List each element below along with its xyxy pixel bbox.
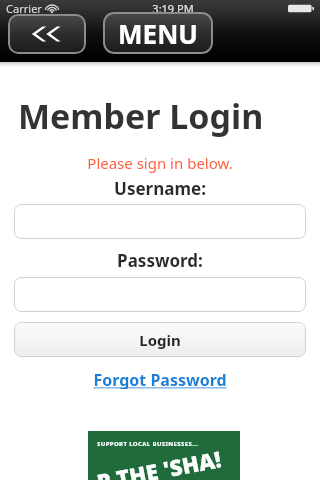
staticText: Username: xyxy=(0,177,320,200)
staticText: Please sign in below. xyxy=(0,153,320,173)
staticText: Carrier xyxy=(6,1,42,16)
button[interactable] xyxy=(14,277,306,312)
staticText: 3:19 PM xyxy=(152,1,194,16)
button[interactable]: Login xyxy=(14,322,306,357)
button[interactable]: SUPPORT LOCAL BUSINESSES... xyxy=(88,431,240,480)
staticText: P THE 'SHA! xyxy=(94,443,224,480)
button[interactable]: Back xyxy=(8,14,86,54)
button[interactable]: MENU xyxy=(103,12,213,54)
staticText: Login xyxy=(139,330,181,350)
staticText: MENU xyxy=(118,16,198,51)
button[interactable]: Forgot Password xyxy=(0,369,320,389)
staticText: Forgot Password xyxy=(93,369,227,389)
staticText: Member Login xyxy=(18,93,264,139)
button[interactable] xyxy=(14,204,306,239)
staticText: Password: xyxy=(0,249,320,272)
staticText: SUPPORT LOCAL BUSINESSES... xyxy=(97,440,199,448)
